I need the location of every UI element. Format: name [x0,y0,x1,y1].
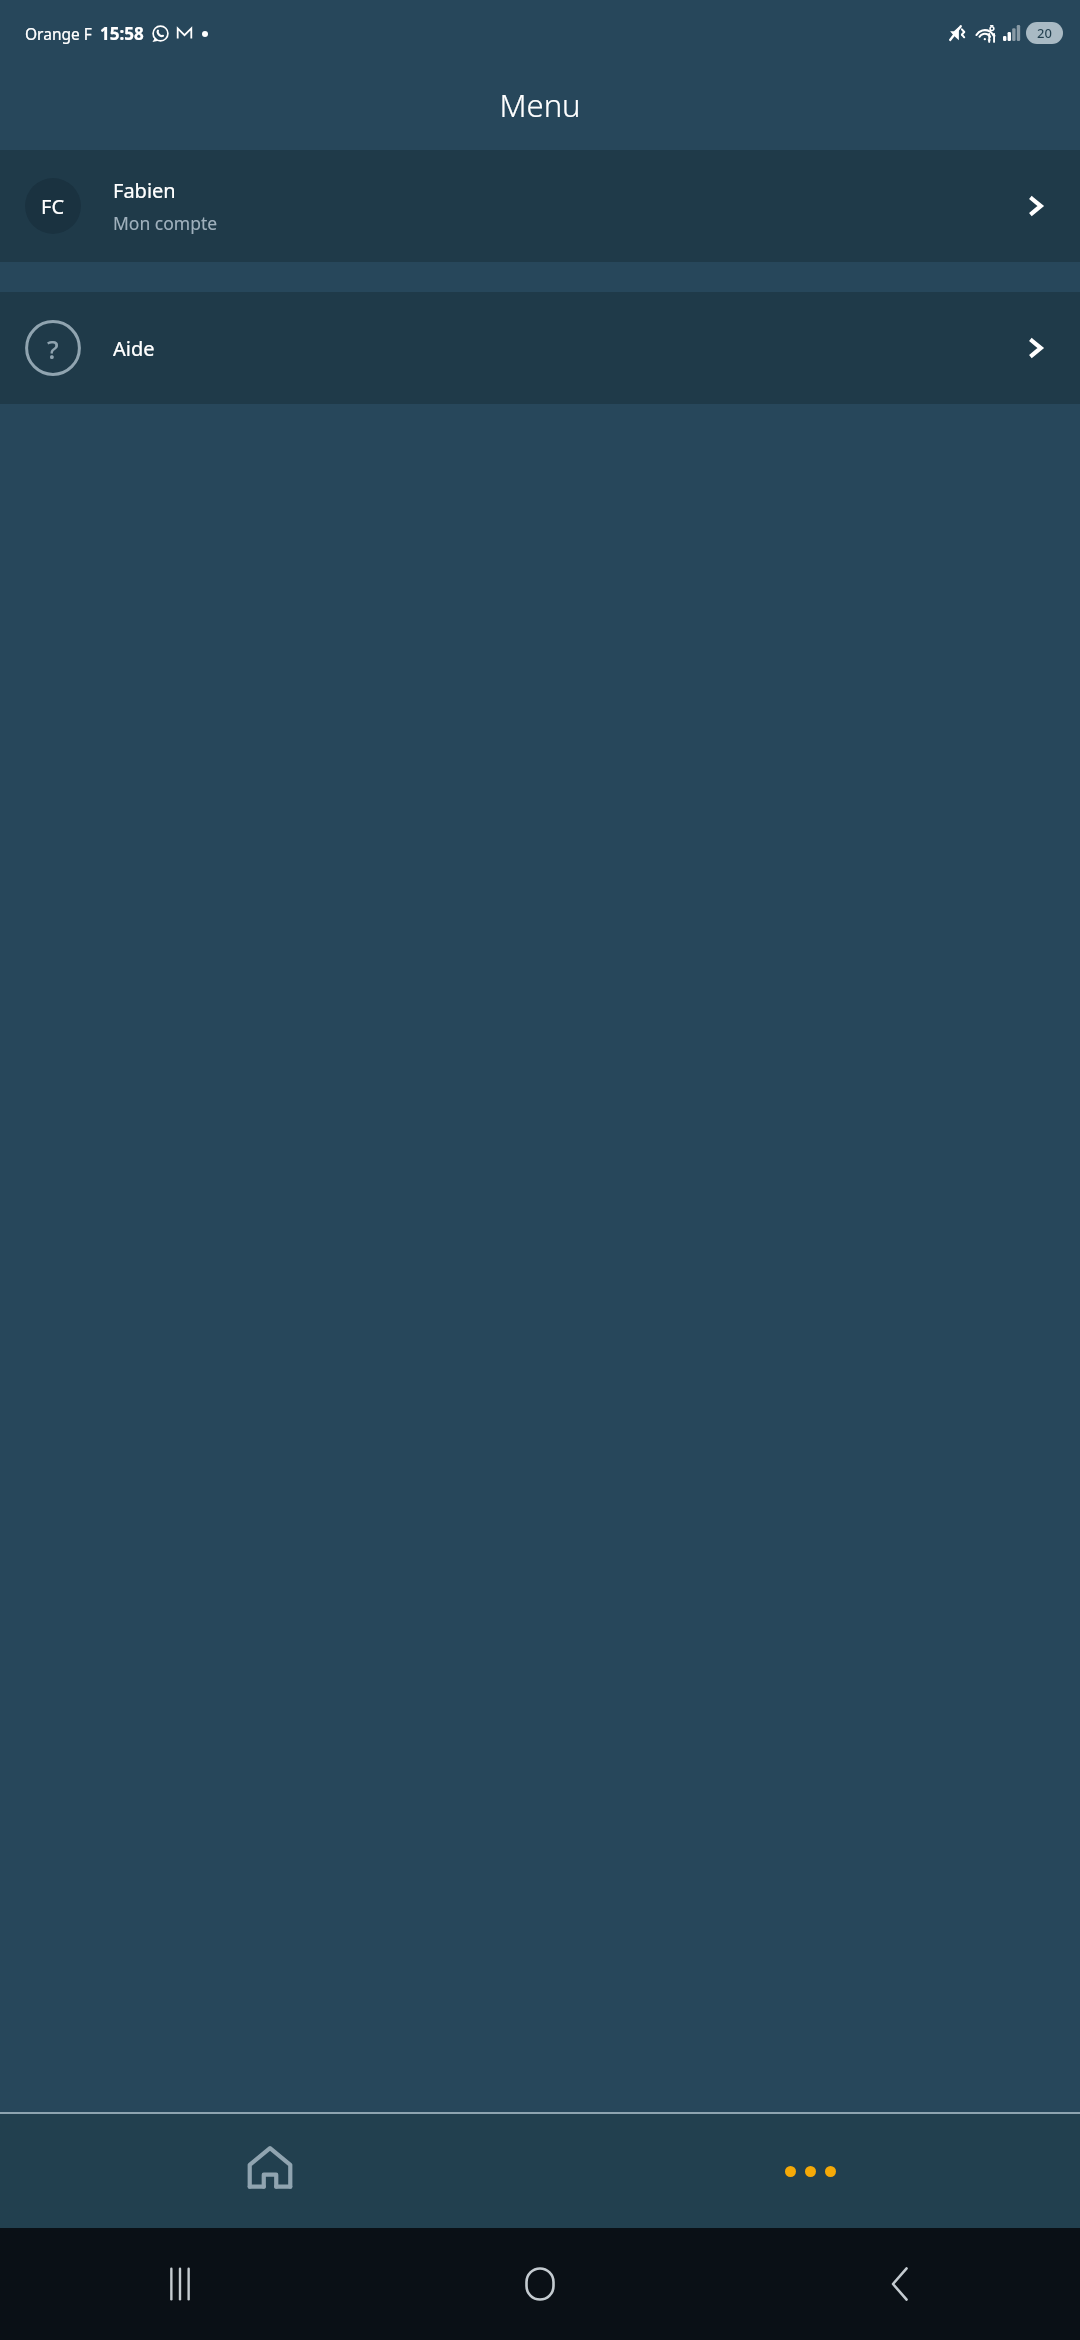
staticText: Orange F [25,23,92,44]
staticText: Fabien [113,177,176,204]
button[interactable]: FC [0,150,1080,262]
other: Ouvrir [1017,329,1055,367]
other: Ouvrir [1017,187,1055,225]
button[interactable]: Retour [720,2228,1080,2340]
button[interactable]: Récents [0,2228,360,2340]
staticText: 15:58 [100,22,144,45]
staticText: Menu [499,84,581,126]
button[interactable]: Accueil [0,2114,540,2228]
staticText: FC [41,193,65,220]
button[interactable]: Accueil système [360,2228,720,2340]
staticText: Mon compte [113,211,218,235]
button[interactable]: ? [0,292,1080,404]
staticText: 20 [1037,24,1052,42]
staticText: ? [47,331,59,366]
button[interactable]: Plus d'options [540,2114,1080,2228]
staticText: Aide [113,335,155,362]
